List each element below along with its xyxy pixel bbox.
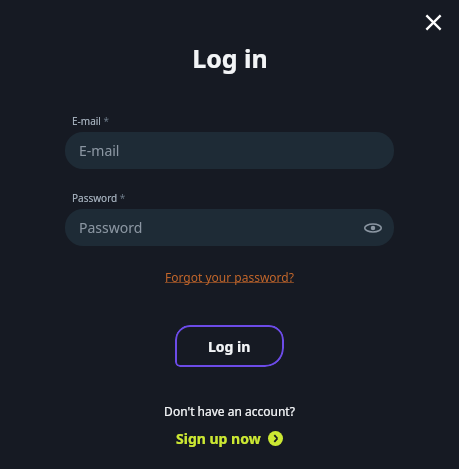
staticText: Password * (72, 191, 126, 205)
button[interactable]: E-mail (65, 132, 394, 169)
staticText: Log in (192, 41, 268, 75)
staticText: Sign up now (176, 429, 261, 448)
button[interactable]: Close (415, 4, 451, 40)
staticText: E-mail * (72, 114, 110, 128)
button[interactable]: Password (65, 209, 394, 246)
button[interactable]: Forgot your password? (161, 267, 298, 287)
button[interactable]: Log in (175, 325, 284, 367)
button[interactable]: Show password (360, 215, 386, 241)
staticText: Password (79, 218, 143, 237)
staticText: Log in (208, 337, 251, 356)
button[interactable]: Sign up now (172, 427, 287, 450)
staticText: Forgot your password? (165, 269, 294, 285)
staticText: E-mail (79, 141, 120, 160)
staticText: Don't have an account? (164, 403, 295, 419)
